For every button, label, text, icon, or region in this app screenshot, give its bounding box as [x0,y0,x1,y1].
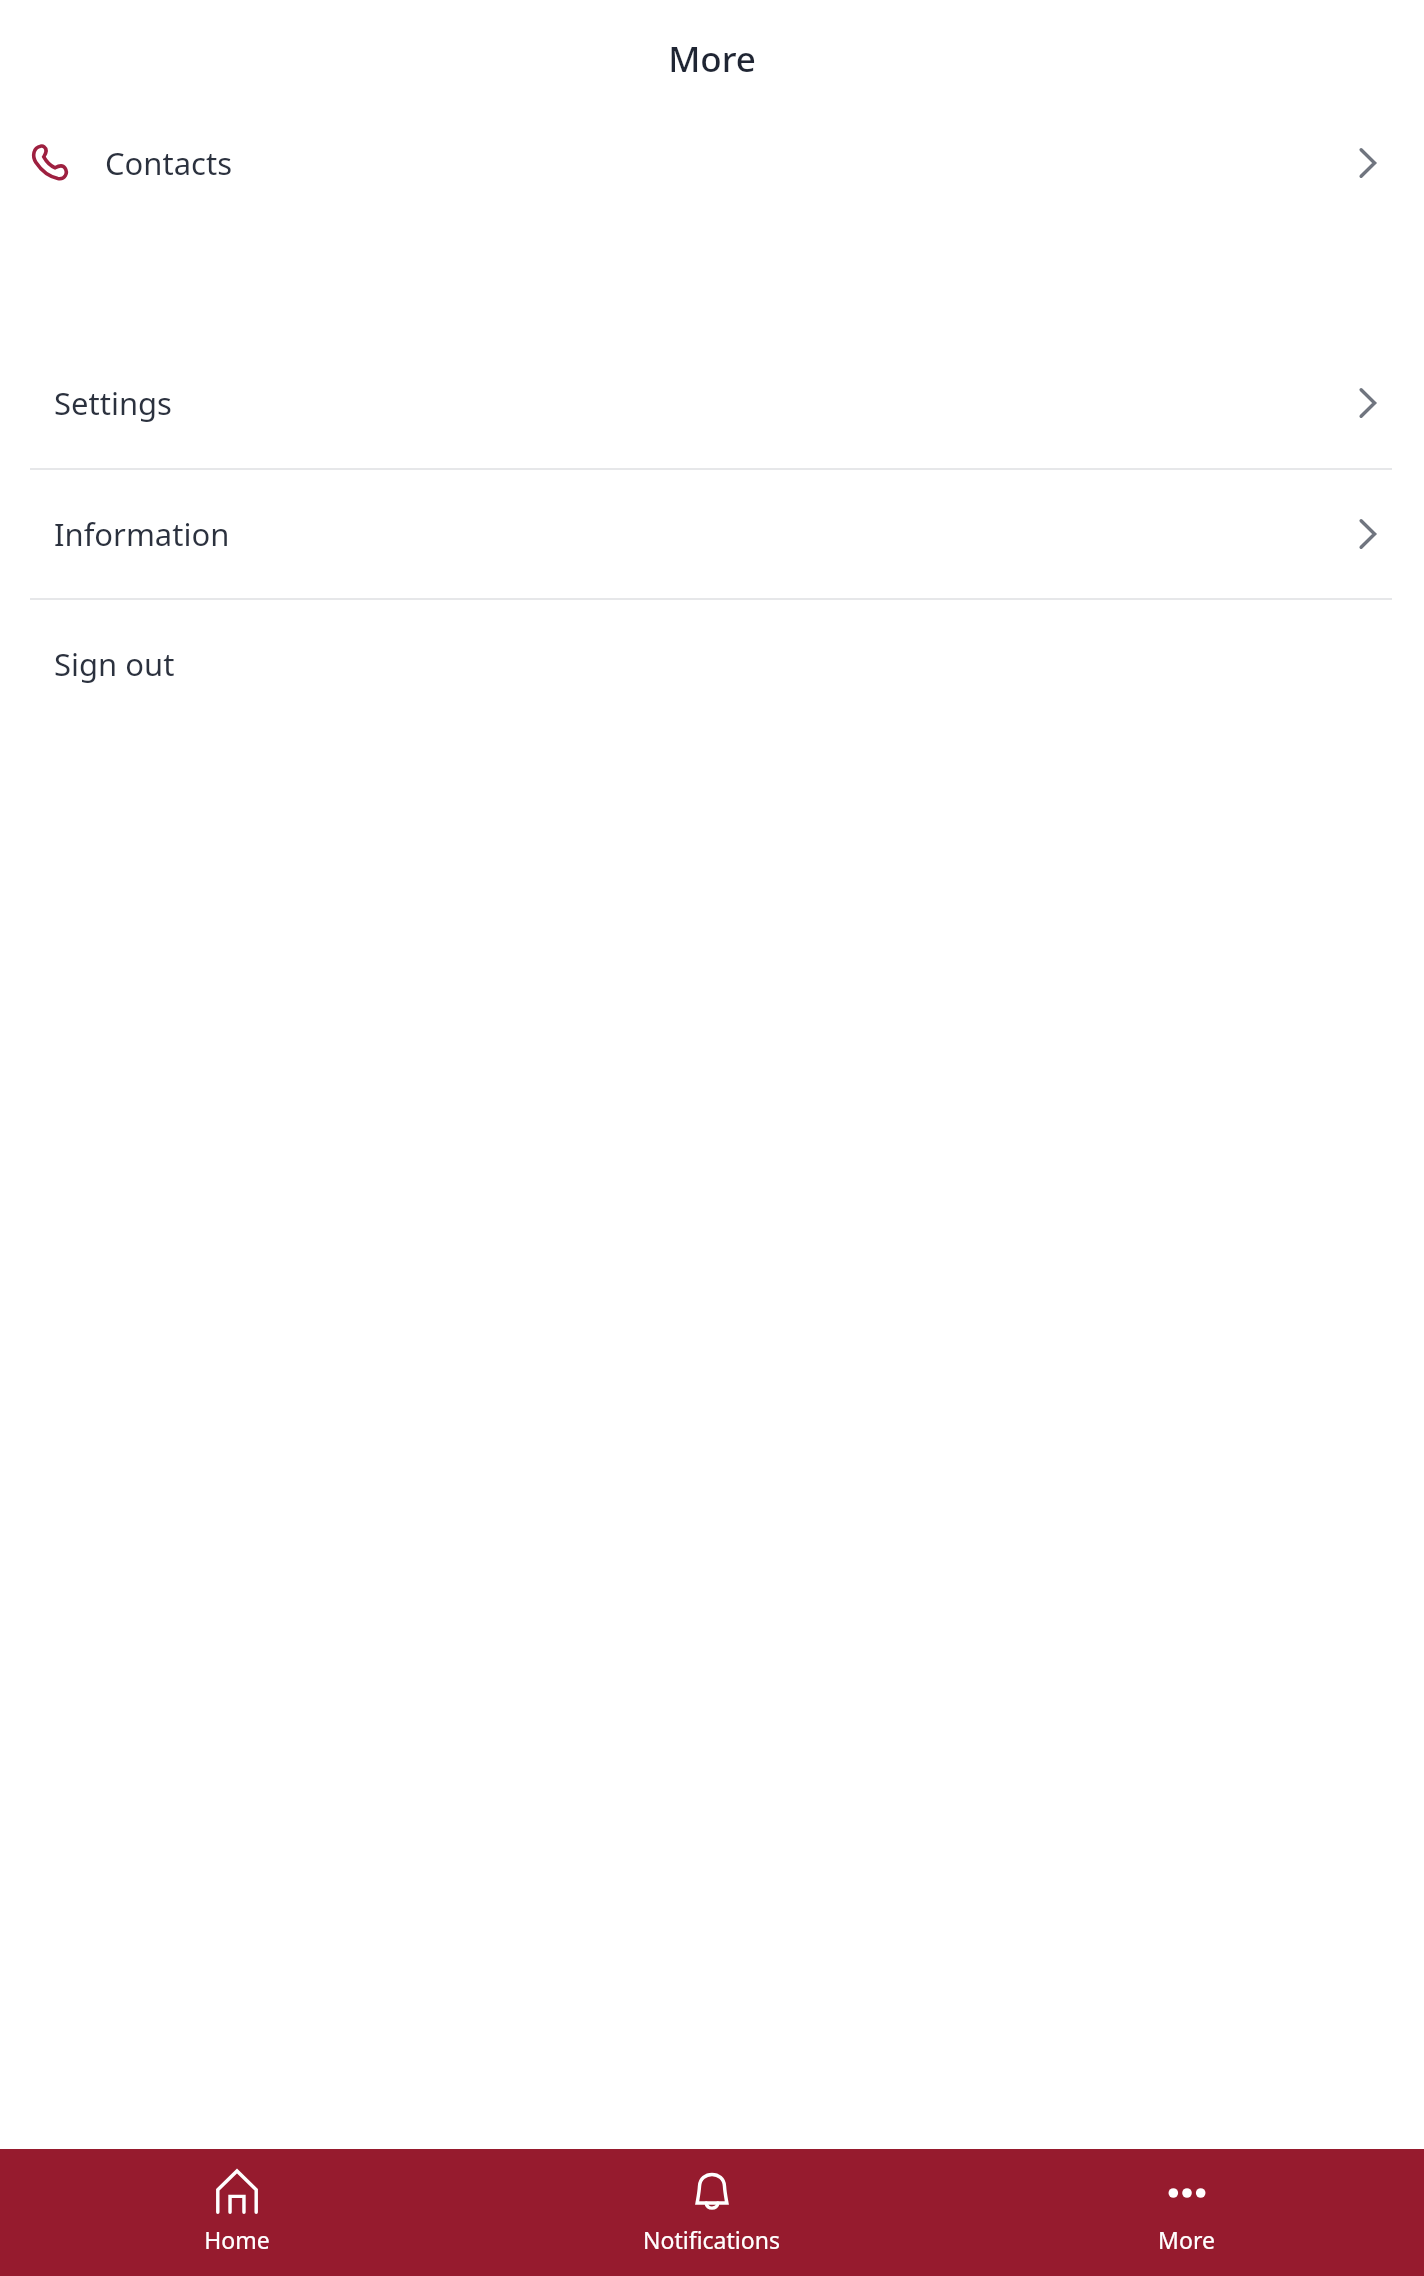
staticText: Information [54,513,230,555]
staticText: Sign out [54,643,175,685]
staticText: Contacts [105,142,233,184]
button[interactable]: Notifications [474,2149,949,2276]
staticText: More [1158,2224,1215,2255]
button[interactable]: Settings [0,338,1424,468]
button[interactable]: More [949,2149,1424,2276]
staticText: Home [204,2224,270,2255]
staticText: Settings [54,382,172,424]
button[interactable]: Information [0,470,1424,598]
staticText: Notifications [643,2224,780,2255]
button[interactable]: Sign out [0,600,1424,728]
staticText: More [668,35,756,83]
button[interactable]: Contacts [0,118,1424,208]
button[interactable]: Home [0,2149,474,2276]
